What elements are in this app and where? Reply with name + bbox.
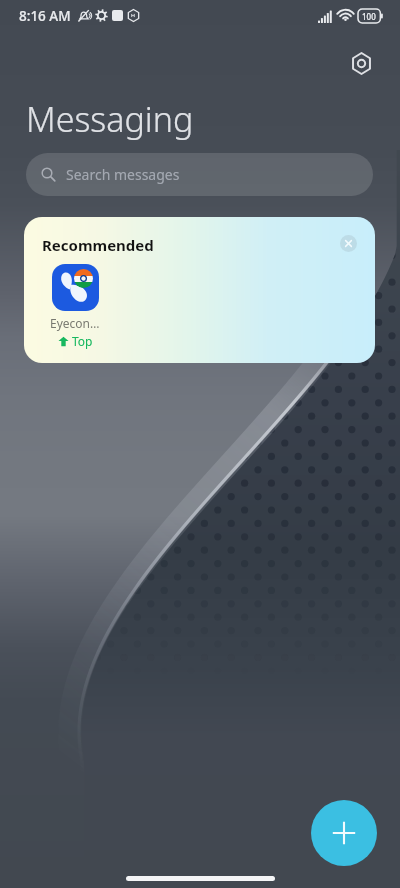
staticText: Eyecon… bbox=[50, 315, 100, 331]
button[interactable]: Recommended bbox=[24, 217, 375, 363]
button[interactable]: Search messages bbox=[26, 153, 373, 196]
staticText: 8:16 AM bbox=[19, 7, 71, 25]
staticText: Top bbox=[72, 333, 93, 349]
staticText: 100 bbox=[362, 11, 376, 22]
staticText: Recommended bbox=[42, 235, 154, 255]
staticText: Search messages bbox=[66, 165, 180, 184]
button[interactable]: Settings bbox=[344, 46, 378, 80]
staticText: Messaging bbox=[26, 96, 194, 142]
button[interactable]: New message bbox=[311, 800, 377, 866]
button[interactable]: Dismiss bbox=[340, 235, 357, 252]
